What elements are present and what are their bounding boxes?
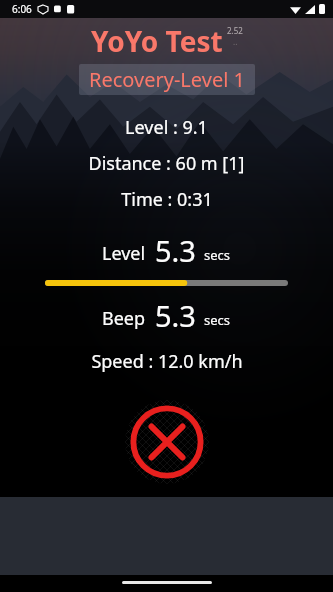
staticText: Speed : 12.0 km/h <box>91 349 243 374</box>
staticText: 2.52 <box>227 25 243 36</box>
staticText: .. <box>233 36 238 47</box>
staticText: Distance : 60 m [1] <box>88 151 245 176</box>
staticText: Time : 0:31 <box>121 187 213 212</box>
button[interactable]: Recovery-Level 1 <box>79 64 255 95</box>
staticText: YoYo Test <box>91 22 223 60</box>
button[interactable]: Stop test <box>125 400 209 484</box>
staticText: secs <box>204 246 231 264</box>
staticText: 5.3 <box>155 296 196 335</box>
staticText: Recovery-Level 1 <box>89 66 245 93</box>
staticText: secs <box>204 311 231 329</box>
staticText: 6:06 <box>12 2 32 16</box>
staticText: Level <box>102 241 146 266</box>
staticText: Beep <box>102 306 146 331</box>
staticText: Level : 9.1 <box>125 115 208 140</box>
staticText: 5.3 <box>155 231 196 270</box>
